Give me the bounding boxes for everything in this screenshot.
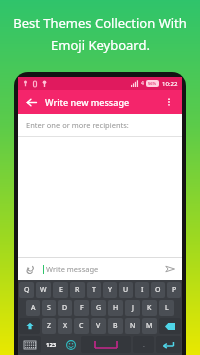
button[interactable]: S xyxy=(42,300,56,316)
button[interactable]: I xyxy=(135,282,149,298)
staticText: O xyxy=(155,285,161,295)
staticText: Q xyxy=(24,285,30,295)
staticText: W xyxy=(40,285,47,295)
button[interactable]: F xyxy=(74,300,89,316)
staticText: X xyxy=(63,321,68,331)
staticText: Write new message xyxy=(45,96,130,108)
button[interactable]: O xyxy=(151,282,165,298)
staticText: I xyxy=(141,285,144,295)
staticText: V xyxy=(96,321,101,331)
button[interactable]: Attach xyxy=(23,262,37,276)
button[interactable]: J xyxy=(125,300,140,316)
staticText: P xyxy=(172,285,177,295)
staticText: M xyxy=(146,321,153,331)
button[interactable]: M xyxy=(142,318,157,334)
button[interactable]: X xyxy=(58,318,72,334)
button[interactable]: Backspace xyxy=(159,318,181,334)
staticText: S xyxy=(47,303,51,313)
button[interactable]: Back xyxy=(23,94,39,110)
staticText: A xyxy=(31,303,36,313)
button[interactable]: Enter one or more recipients: xyxy=(18,114,182,136)
button[interactable]: T xyxy=(87,282,101,298)
staticText: K xyxy=(147,303,152,313)
button[interactable]: D xyxy=(58,300,72,316)
staticText: U xyxy=(123,285,129,295)
staticText: B xyxy=(113,321,118,331)
button[interactable]: More options xyxy=(161,94,177,110)
staticText: T xyxy=(92,285,96,295)
button[interactable]: E xyxy=(53,282,68,298)
staticText: Z xyxy=(47,321,52,331)
button[interactable]: Space xyxy=(81,336,131,353)
button[interactable]: Enter xyxy=(156,336,181,353)
button[interactable]: 123 xyxy=(43,336,60,353)
button[interactable]: L xyxy=(159,300,174,316)
button[interactable]: G xyxy=(91,300,106,316)
staticText: G xyxy=(96,303,102,313)
staticText: 123 xyxy=(46,341,57,349)
button[interactable]: R xyxy=(70,282,85,298)
button[interactable]: V xyxy=(91,318,106,334)
staticText: . xyxy=(143,340,145,350)
button[interactable]: B xyxy=(108,318,123,334)
staticText: R xyxy=(75,285,80,295)
button[interactable]: A xyxy=(26,300,40,316)
button[interactable]: Q xyxy=(19,282,34,298)
button[interactable]: C xyxy=(74,318,89,334)
button[interactable]: Y xyxy=(103,282,117,298)
button[interactable]: P xyxy=(167,282,181,298)
staticText: N xyxy=(130,321,136,331)
button[interactable]: Z xyxy=(42,318,56,334)
staticText: 56% xyxy=(148,81,157,86)
staticText: Write message xyxy=(46,264,99,274)
staticText: C xyxy=(79,321,84,331)
button[interactable]: Shift xyxy=(19,318,40,334)
staticText: L xyxy=(165,303,169,313)
button[interactable]: W xyxy=(36,282,51,298)
button[interactable]: N xyxy=(125,318,140,334)
button[interactable]: K xyxy=(142,300,157,316)
button[interactable]: Emoji xyxy=(62,336,79,353)
staticText: F xyxy=(80,303,84,313)
staticText: J xyxy=(132,303,134,313)
staticText: Y xyxy=(108,285,112,295)
button[interactable]: Send xyxy=(163,262,177,276)
staticText: 10:22 xyxy=(162,80,178,88)
staticText: Best Themes Collection With xyxy=(13,14,187,32)
staticText: E xyxy=(59,285,63,295)
staticText: D xyxy=(62,303,68,313)
button[interactable]: U xyxy=(119,282,133,298)
staticText: Emoji Keyboard. xyxy=(51,36,150,54)
button[interactable]: Switch keyboard xyxy=(19,336,41,353)
staticText: H xyxy=(113,303,119,313)
staticText: Enter one or more recipients: xyxy=(26,120,129,130)
staticText: 4 xyxy=(141,80,144,87)
button[interactable]: Write message xyxy=(46,264,163,274)
button[interactable]: H xyxy=(108,300,123,316)
